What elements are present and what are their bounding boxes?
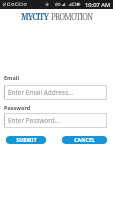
staticText: Enter Password... <box>8 116 60 125</box>
staticText: Password <box>4 104 31 111</box>
staticText: 10:07 AM <box>85 1 111 9</box>
staticText: CANCEL <box>74 137 95 144</box>
button[interactable]: Enter Email Address... <box>4 85 107 100</box>
staticText: Enter Email Address... <box>8 88 74 97</box>
staticText: SUBMIT <box>16 137 37 144</box>
button[interactable]: CANCEL <box>62 136 107 144</box>
button[interactable]: SUBMIT <box>6 136 46 144</box>
staticText: Email <box>4 74 20 81</box>
button[interactable]: Enter Password... <box>4 113 107 128</box>
other: Status bar <box>0 0 113 9</box>
staticText: MYCITY <box>21 11 49 22</box>
staticText: PROMOTION <box>51 11 93 22</box>
